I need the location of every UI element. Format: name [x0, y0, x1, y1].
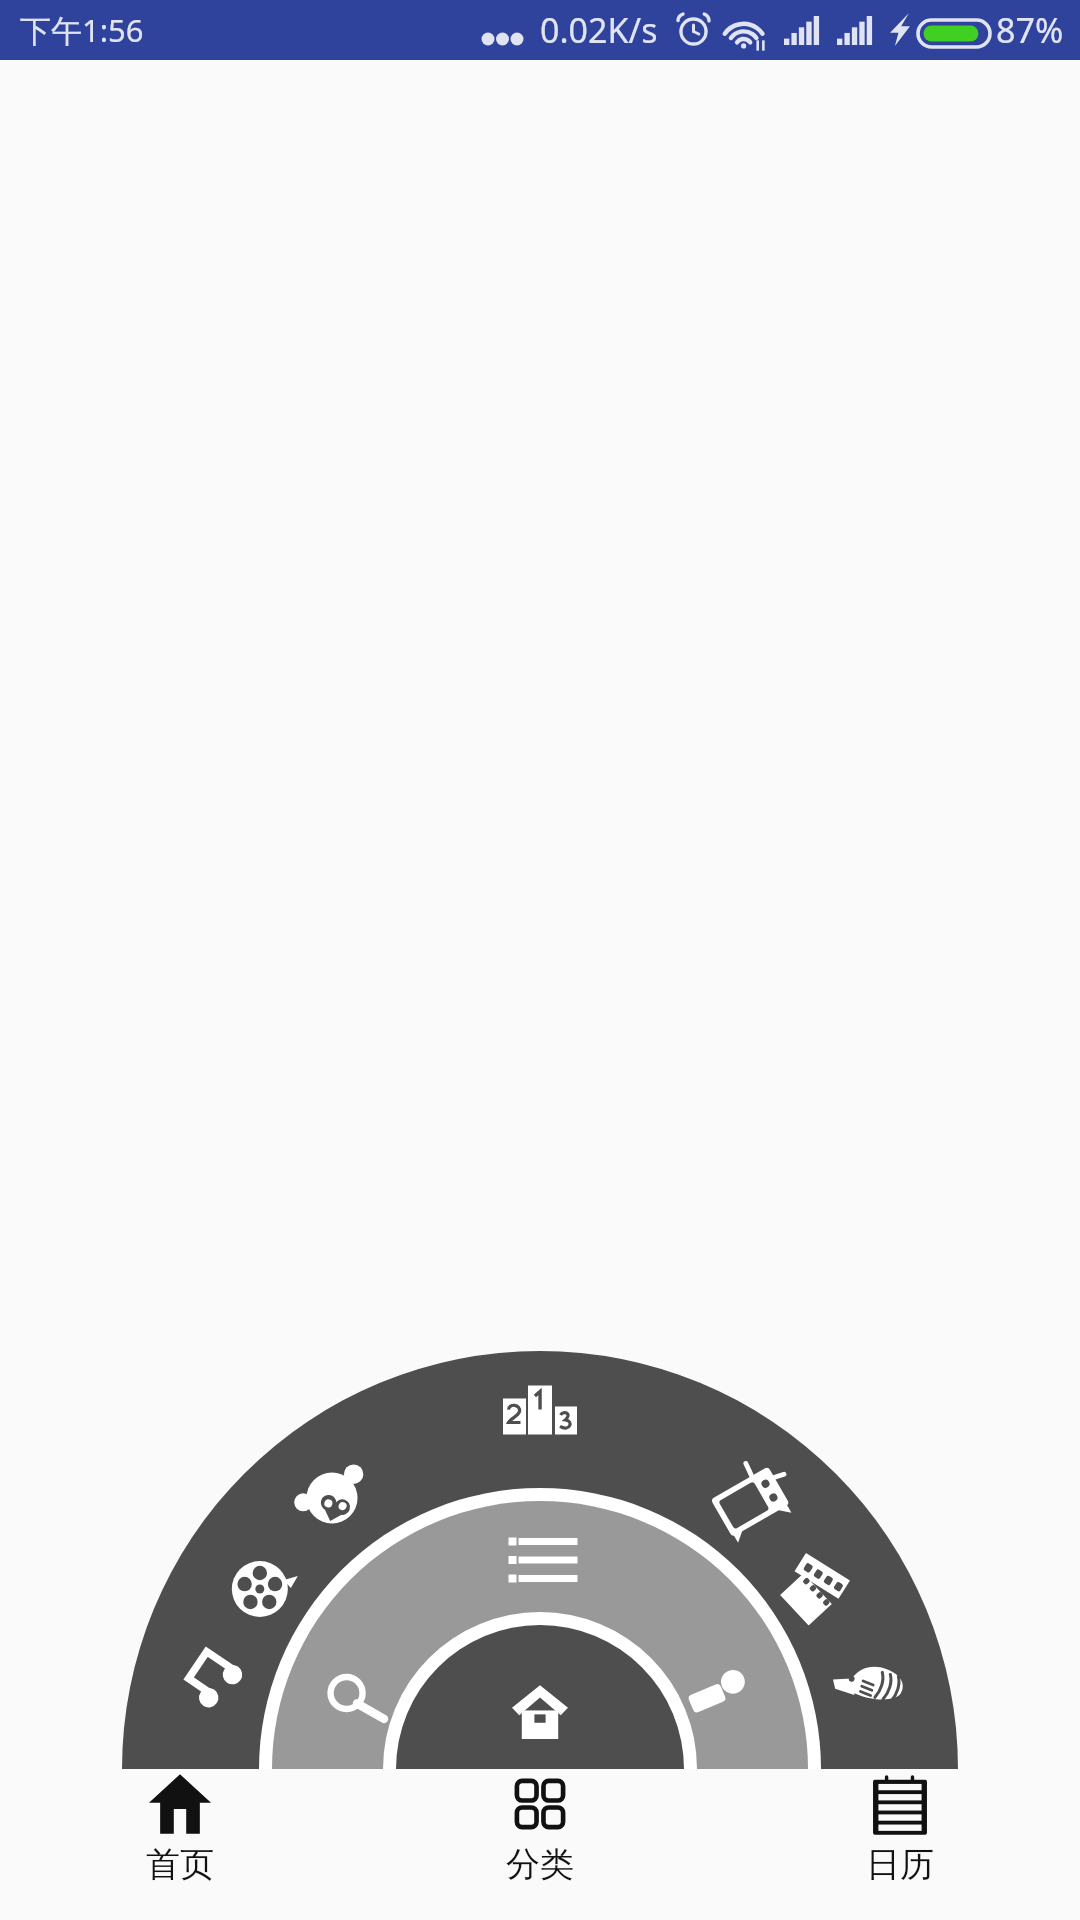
- button[interactable]: 日历: [720, 1769, 1080, 1920]
- button[interactable]: Film: [222, 1549, 302, 1629]
- button[interactable]: Movie tickets: [773, 1548, 853, 1628]
- staticText: 分类: [506, 1843, 574, 1886]
- button[interactable]: Ranking: [500, 1370, 580, 1450]
- button[interactable]: Kids: [292, 1458, 372, 1538]
- staticText: 0.02K/s: [540, 7, 658, 53]
- button[interactable]: 分类: [360, 1769, 720, 1920]
- staticText: 87%: [996, 7, 1064, 53]
- button[interactable]: Home: [500, 1672, 580, 1752]
- button[interactable]: Search: [317, 1653, 397, 1733]
- staticText: 日历: [866, 1843, 934, 1886]
- button[interactable]: Music: [170, 1639, 250, 1719]
- staticText: 下午1:56: [20, 9, 144, 51]
- button[interactable]: TV: [708, 1458, 788, 1538]
- button[interactable]: Seafood: [829, 1638, 909, 1718]
- button[interactable]: Video: [680, 1652, 760, 1732]
- button[interactable]: 首页: [0, 1769, 360, 1920]
- staticText: 首页: [146, 1843, 214, 1886]
- button[interactable]: List: [503, 1520, 583, 1600]
